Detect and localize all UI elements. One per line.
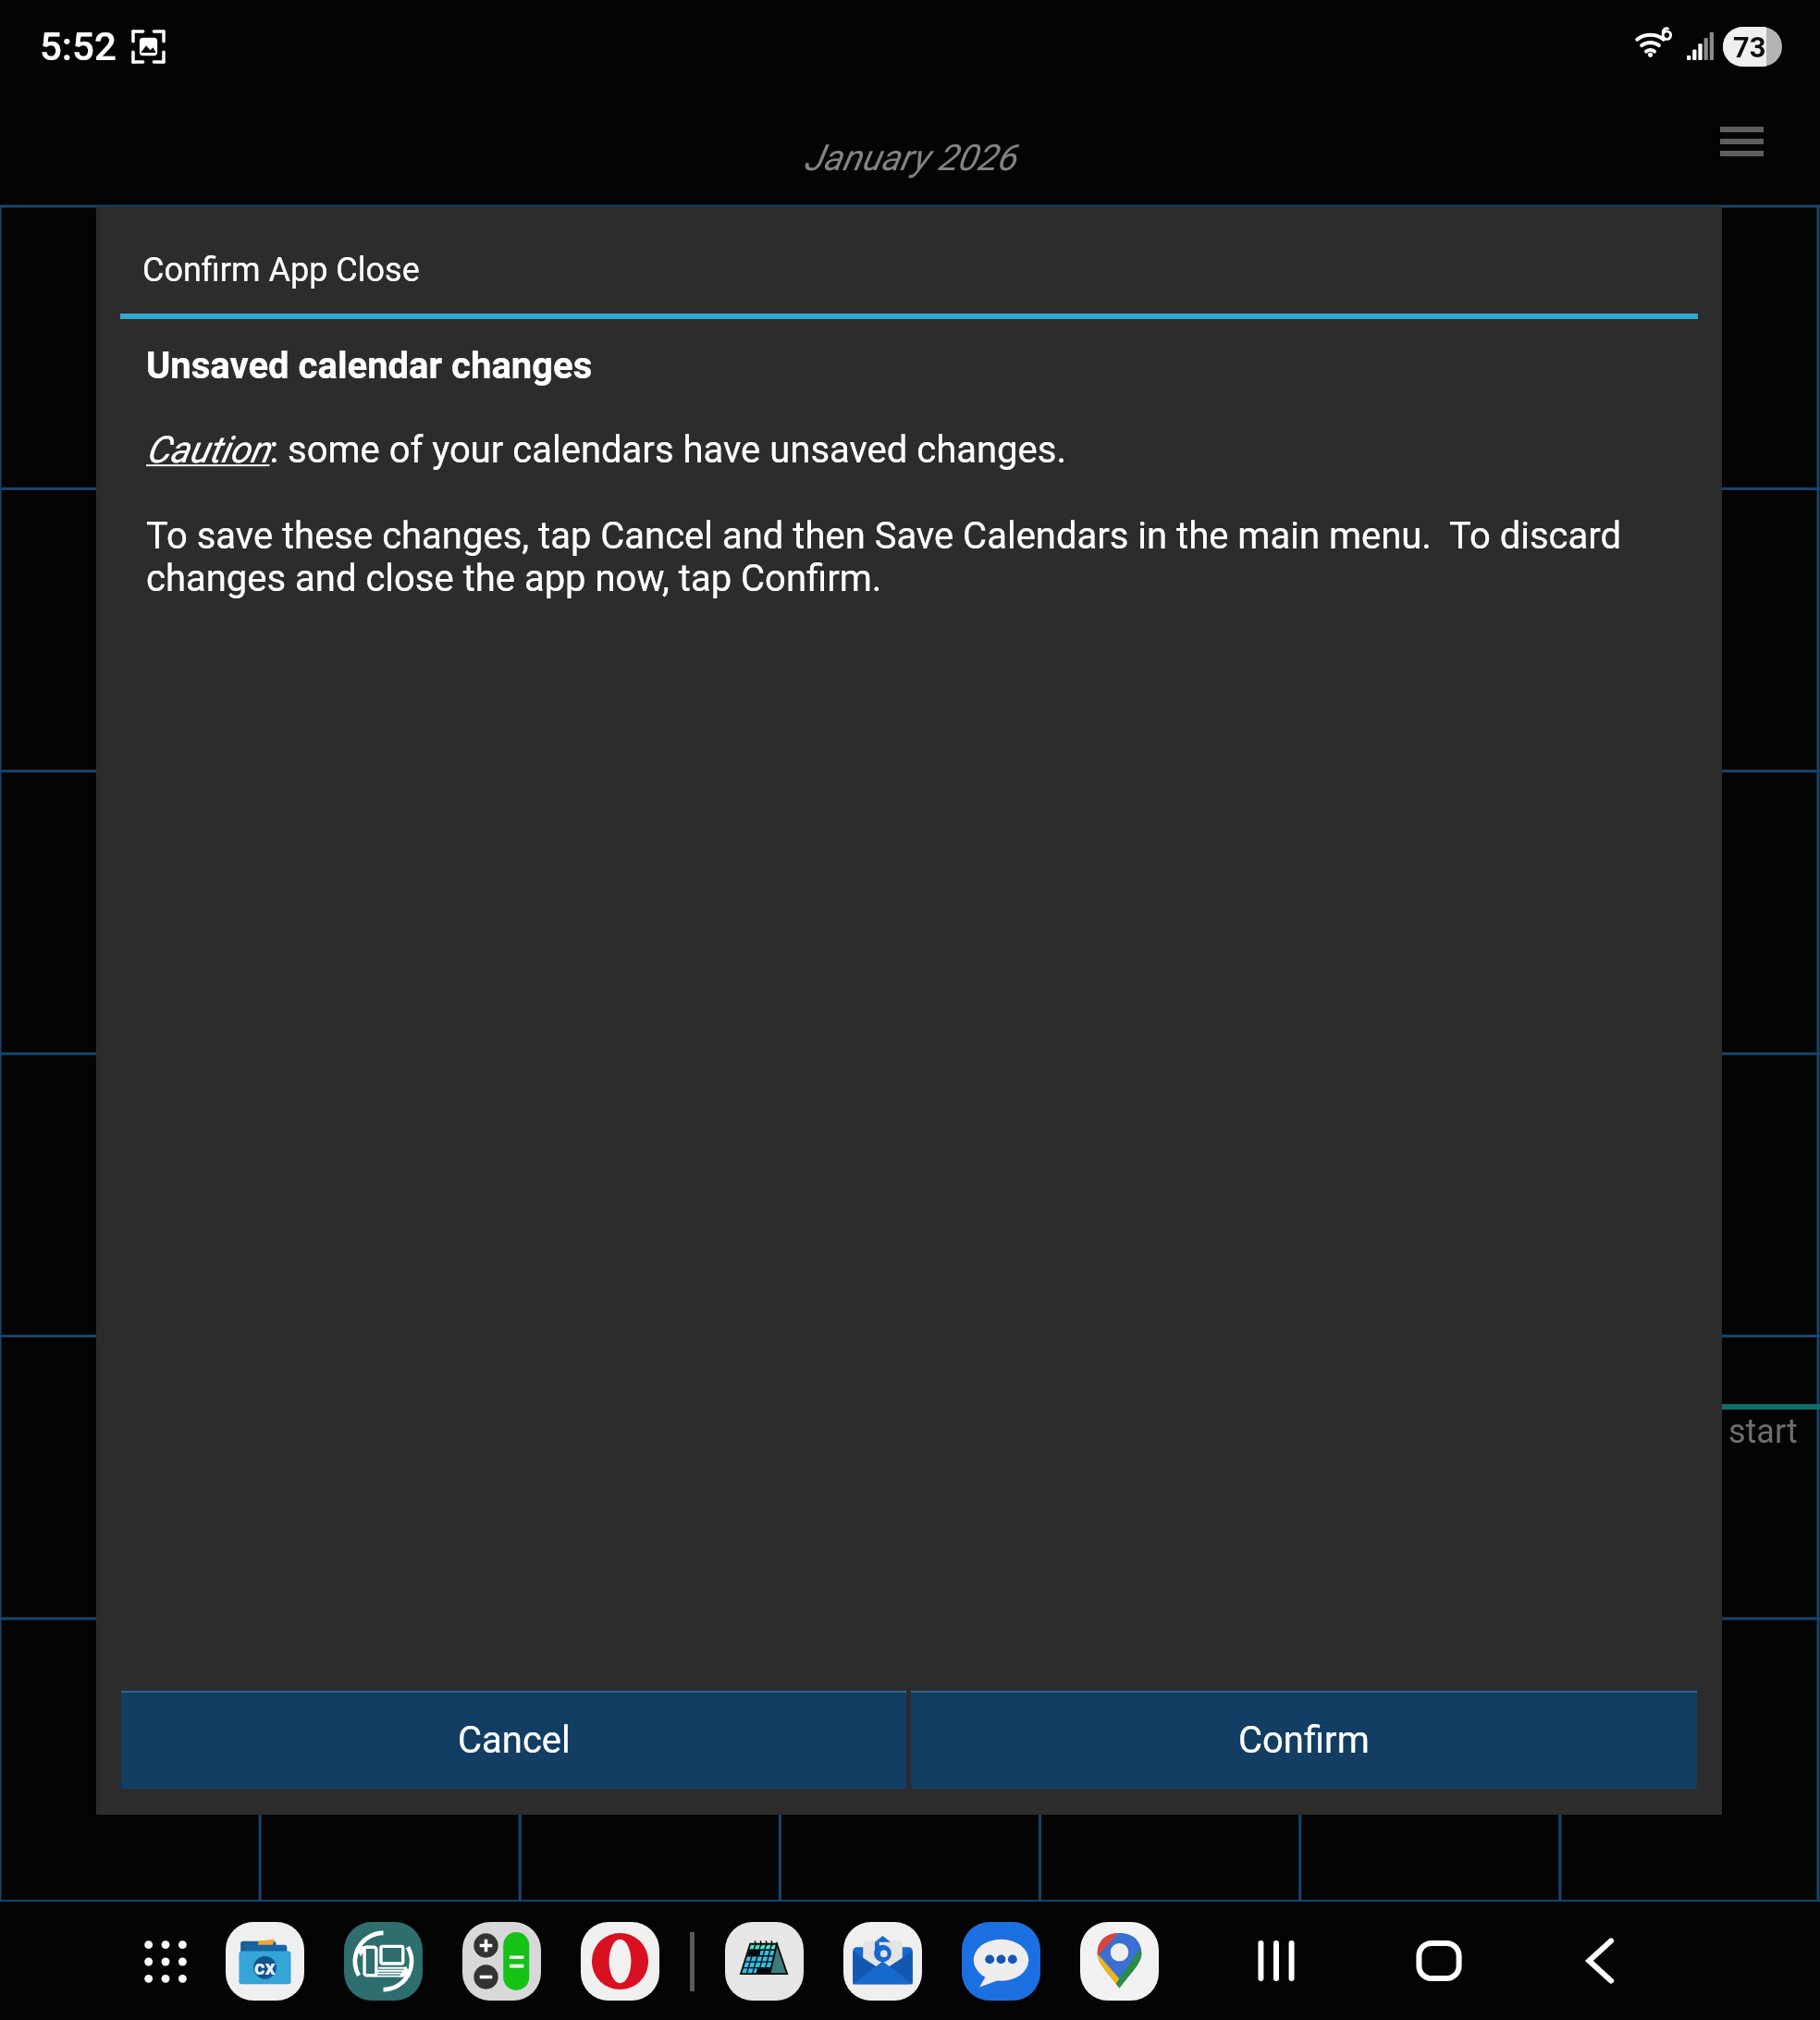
button[interactable]: Maps xyxy=(1080,1922,1159,2001)
button[interactable]: Apps xyxy=(141,1937,191,1987)
button[interactable]: Confirm xyxy=(911,1691,1697,1789)
staticText: cx xyxy=(254,1956,276,1980)
button[interactable]: Recent apps xyxy=(1243,1928,1310,1994)
button[interactable]: Smart Switch xyxy=(344,1922,423,2001)
button[interactable]: Cancel xyxy=(121,1691,906,1789)
staticText: start xyxy=(1728,1412,1798,1451)
button[interactable]: Calculator xyxy=(462,1922,541,2001)
staticText: Unsaved calendar changes xyxy=(146,344,593,388)
button[interactable]: Calendar xyxy=(725,1922,804,2001)
staticText: Cancel xyxy=(458,1718,571,1762)
button[interactable]: Opera xyxy=(581,1922,659,2001)
button[interactable]: Home xyxy=(1406,1928,1472,1994)
staticText: Confirm App Close xyxy=(142,251,420,289)
staticText: January 2026 xyxy=(804,137,1016,179)
button[interactable]: Back xyxy=(1568,1928,1635,1994)
button[interactable]: Messages xyxy=(962,1922,1040,2001)
button[interactable]: Mail xyxy=(843,1922,922,2001)
button[interactable]: CX File Explorer xyxy=(226,1922,304,2001)
staticText: Caution: some of your calendars have uns… xyxy=(146,428,1066,472)
button[interactable]: Screenshot xyxy=(129,28,167,66)
button[interactable]: Menu xyxy=(1720,127,1764,156)
staticText: 73 xyxy=(1733,31,1766,64)
staticText: To save these changes, tap Cancel and th… xyxy=(146,514,1672,600)
staticText: Confirm xyxy=(1238,1718,1370,1762)
staticText: 5:52 xyxy=(40,24,117,69)
